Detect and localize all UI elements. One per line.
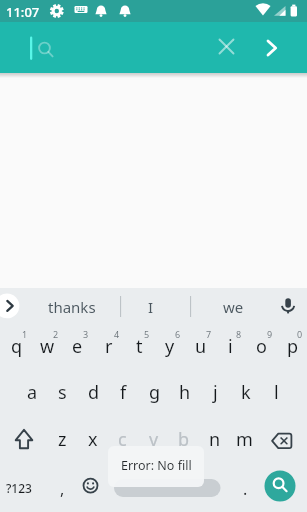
staticText: h <box>179 380 191 405</box>
button[interactable]: w <box>33 331 62 361</box>
staticText: e <box>72 334 83 359</box>
staticText: p <box>287 334 299 359</box>
button[interactable]: r <box>94 331 123 361</box>
staticText: q <box>11 334 23 359</box>
button[interactable] <box>0 290 22 324</box>
staticText: r <box>105 334 113 359</box>
staticText: l <box>274 380 279 405</box>
staticText: I <box>148 297 154 317</box>
button[interactable] <box>214 34 240 60</box>
button[interactable]: b <box>169 424 198 454</box>
button[interactable]: s <box>48 377 77 407</box>
staticText: i <box>228 334 233 359</box>
button[interactable]: t <box>125 331 154 361</box>
staticText: 1 <box>22 328 28 340</box>
staticText: , <box>60 478 65 500</box>
staticText: b <box>178 427 190 452</box>
button[interactable]: x <box>78 424 107 454</box>
staticText: t <box>136 334 143 359</box>
button[interactable]: j <box>201 377 230 407</box>
button[interactable] <box>0 22 307 73</box>
staticText: z <box>58 427 67 452</box>
button[interactable]: g <box>140 377 169 407</box>
staticText: thanks <box>48 297 96 317</box>
button[interactable]: m <box>230 424 259 454</box>
staticText: x <box>88 427 98 452</box>
button[interactable]: . <box>232 475 258 503</box>
button[interactable]: d <box>79 377 108 407</box>
button[interactable]: I <box>131 294 171 320</box>
staticText: 0 <box>297 328 303 340</box>
staticText: m <box>236 427 253 452</box>
button[interactable]: a <box>18 377 47 407</box>
button[interactable]: , <box>49 475 75 503</box>
staticText: g <box>149 380 161 405</box>
button[interactable]: z <box>48 424 77 454</box>
button[interactable]: n <box>200 424 229 454</box>
staticText: 5 <box>144 328 150 340</box>
button[interactable]: ?123 <box>1 474 37 502</box>
staticText: 2 <box>53 328 59 340</box>
button[interactable] <box>108 470 228 504</box>
staticText: 4 <box>114 328 120 340</box>
staticText: s <box>58 380 67 405</box>
button[interactable]: u <box>186 331 215 361</box>
staticText: ?123 <box>6 480 32 496</box>
staticText: we <box>223 297 244 317</box>
button[interactable]: q <box>2 331 31 361</box>
staticText: d <box>88 380 100 405</box>
button[interactable]: k <box>231 377 260 407</box>
button[interactable]: h <box>170 377 199 407</box>
button[interactable] <box>78 468 106 512</box>
button[interactable]: o <box>247 331 276 361</box>
button[interactable]: i <box>216 331 245 361</box>
button[interactable] <box>264 470 298 504</box>
staticText: w <box>40 334 55 359</box>
staticText: j <box>213 380 218 405</box>
staticText: o <box>256 334 267 359</box>
button[interactable]: p <box>278 331 307 361</box>
button[interactable] <box>260 34 286 60</box>
button[interactable] <box>266 424 307 468</box>
staticText: v <box>149 427 159 452</box>
staticText: 9 <box>267 328 273 340</box>
button[interactable]: l <box>262 377 291 407</box>
staticText: 3 <box>83 328 89 340</box>
staticText: a <box>27 380 38 405</box>
button[interactable] <box>0 424 44 468</box>
staticText: Error: No fill <box>121 457 192 474</box>
button[interactable]: f <box>109 377 138 407</box>
staticText: n <box>209 427 221 452</box>
button[interactable]: we <box>211 294 255 320</box>
staticText: . <box>243 478 248 500</box>
button[interactable]: y <box>155 331 184 361</box>
staticText: c <box>118 427 127 452</box>
staticText: f <box>120 380 127 405</box>
button[interactable]: c <box>108 424 137 454</box>
staticText: 7 <box>206 328 212 340</box>
staticText: 6 <box>175 328 181 340</box>
staticText: 8 <box>236 328 242 340</box>
staticText: y <box>165 334 175 359</box>
button[interactable]: thanks <box>40 294 104 320</box>
staticText: u <box>195 334 207 359</box>
button[interactable] <box>272 290 302 324</box>
staticText: k <box>241 380 251 405</box>
staticText: 11:07 <box>6 3 40 21</box>
button[interactable]: e <box>63 331 92 361</box>
button[interactable]: v <box>139 424 168 454</box>
